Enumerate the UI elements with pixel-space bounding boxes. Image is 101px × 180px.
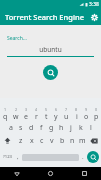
staticText: 5	[45, 107, 48, 112]
button[interactable]: m	[77, 134, 87, 147]
button[interactable]: ,	[14, 147, 22, 167]
staticText: h	[59, 123, 64, 133]
button[interactable]: .	[79, 147, 87, 167]
button[interactable]: Home	[33, 167, 67, 180]
button[interactable]: ?123	[2, 147, 14, 167]
button[interactable]: a	[5, 121, 16, 134]
button[interactable]: 2	[11, 107, 21, 121]
button[interactable]: g	[46, 121, 56, 134]
staticText: 9	[85, 107, 88, 112]
button[interactable]: 7	[61, 107, 71, 121]
staticText: o	[84, 112, 89, 121]
staticText: v	[50, 136, 54, 146]
button[interactable]: n	[67, 134, 77, 147]
staticText: i	[76, 112, 78, 121]
staticText: j	[70, 123, 72, 133]
button[interactable]: j	[66, 121, 76, 134]
button[interactable]: k	[76, 121, 86, 134]
button[interactable]: v	[47, 134, 57, 147]
staticText: m	[79, 136, 86, 146]
button[interactable]: Shift	[0, 134, 15, 147]
staticText: g	[49, 123, 54, 133]
staticText: 2	[15, 107, 18, 112]
staticText: k	[79, 123, 83, 133]
staticText: 6	[55, 107, 58, 112]
button[interactable]: 3	[21, 107, 31, 121]
staticText: 8	[75, 107, 78, 112]
button[interactable]: Recents	[67, 167, 101, 180]
button[interactable]: Settings	[87, 10, 101, 24]
staticText: ,	[17, 153, 19, 161]
staticText: 0	[95, 107, 98, 112]
staticText: Torrent Search Engine	[5, 12, 84, 22]
staticText: ?123	[3, 154, 13, 160]
staticText: t	[45, 112, 48, 121]
button[interactable]: 6	[51, 107, 61, 121]
staticText: q	[3, 112, 8, 121]
button[interactable]: 8	[71, 107, 81, 121]
staticText: 3:38	[89, 1, 99, 8]
button[interactable]: Search	[43, 65, 58, 80]
button[interactable]: Search	[87, 151, 99, 163]
staticText: 1	[4, 107, 7, 112]
staticText: c	[40, 136, 44, 146]
staticText: r	[35, 112, 38, 121]
staticText: Search...	[7, 35, 27, 42]
staticText: a	[9, 123, 13, 133]
button[interactable]: d	[26, 121, 36, 134]
button[interactable]: 4	[31, 107, 41, 121]
button[interactable]: Back	[0, 167, 33, 180]
staticText: f	[40, 123, 43, 133]
button[interactable]: h	[56, 121, 66, 134]
staticText: 3	[25, 107, 28, 112]
button[interactable]: f	[36, 121, 46, 134]
staticText: e	[24, 112, 28, 121]
staticText: b	[60, 136, 65, 146]
button[interactable]: l	[86, 121, 96, 134]
button[interactable]: ubuntu	[7, 45, 94, 54]
staticText: z	[19, 136, 23, 146]
button[interactable]: s	[16, 121, 26, 134]
staticText: w	[13, 112, 19, 121]
button[interactable]: c	[37, 134, 47, 147]
staticText: p	[94, 112, 99, 121]
staticText: x	[30, 136, 34, 146]
button[interactable]: z	[15, 134, 26, 147]
staticText: d	[29, 123, 34, 133]
staticText: l	[90, 123, 92, 133]
staticText: 4	[35, 107, 38, 112]
button[interactable]: b	[57, 134, 67, 147]
staticText: 7	[65, 107, 68, 112]
staticText: s	[19, 123, 23, 133]
button[interactable]: Backspace	[87, 134, 101, 147]
staticText: .	[82, 153, 84, 161]
button[interactable]: x	[26, 134, 37, 147]
button[interactable]: 0	[91, 107, 101, 121]
button[interactable]: 9	[81, 107, 91, 121]
staticText: u	[64, 112, 69, 121]
staticText: n	[70, 136, 75, 146]
button[interactable]: 1	[0, 107, 11, 121]
staticText: ubuntu	[39, 45, 62, 54]
button[interactable]: 5	[41, 107, 51, 121]
staticText: y	[54, 112, 58, 121]
